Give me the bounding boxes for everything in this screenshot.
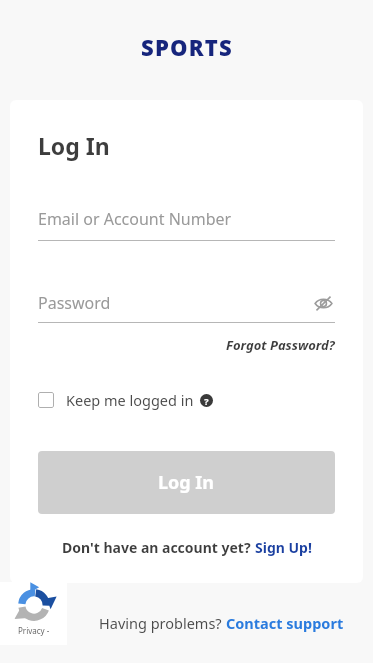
button[interactable]: Help — [200, 394, 213, 407]
staticText: Having problems? — [99, 613, 226, 633]
staticText: Email or Account Number — [38, 208, 232, 230]
staticText: Forgot Password? — [226, 336, 335, 354]
staticText: Privacy - — [18, 625, 50, 636]
staticText: Sign Up! — [255, 538, 312, 557]
staticText: Password — [38, 292, 311, 314]
staticText: Log In — [158, 470, 215, 495]
button[interactable]: Log In — [38, 451, 335, 514]
staticText: SPORTS — [141, 32, 233, 62]
staticText: Keep me logged in — [66, 390, 194, 410]
staticText: Log In — [38, 130, 110, 161]
button[interactable]: Having problems? — [99, 613, 344, 633]
staticText: ? — [204, 395, 209, 407]
button[interactable]: reCAPTCHA privacy — [0, 582, 67, 645]
button[interactable]: Email or Account Number — [38, 208, 335, 241]
staticText: Contact support — [226, 613, 344, 633]
button[interactable]: Show password — [311, 291, 335, 315]
button[interactable]: Password — [38, 291, 335, 323]
button[interactable]: Don't have an account yet? — [62, 538, 312, 557]
staticText: Don't have an account yet? — [62, 538, 255, 557]
button[interactable]: Forgot Password? — [226, 336, 335, 354]
button[interactable]: Keep me logged in — [38, 390, 213, 410]
